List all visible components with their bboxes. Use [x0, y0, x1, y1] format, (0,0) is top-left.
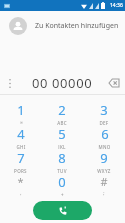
- staticText: 0: [58, 173, 66, 191]
- button[interactable]: 7: [0, 149, 41, 173]
- staticText: MNO: [98, 144, 111, 149]
- staticText: *: [17, 174, 24, 189]
- staticText: 5: [58, 125, 66, 143]
- button[interactable]: Zu Kontakten hinzufügen: [0, 11, 125, 40]
- button[interactable]: 6: [83, 125, 125, 149]
- staticText: 7: [17, 149, 25, 167]
- button[interactable]: Backspace: [103, 72, 125, 94]
- staticText: 4: [17, 125, 25, 143]
- staticText: WXYZ: [97, 168, 111, 173]
- staticText: +: [61, 192, 64, 197]
- staticText: 1: [17, 101, 25, 119]
- button[interactable]: 0: [41, 173, 83, 197]
- staticText: GHI: [16, 144, 26, 149]
- button[interactable]: 1: [0, 101, 41, 125]
- button[interactable]: 8: [41, 149, 83, 173]
- staticText: ∞: [19, 120, 24, 125]
- staticText: 3: [100, 101, 108, 119]
- staticText: 14:36: [110, 2, 123, 9]
- staticText: TUV: [57, 168, 67, 173]
- button[interactable]: More options: [0, 72, 20, 94]
- staticText: 8: [58, 149, 66, 167]
- staticText: 9: [100, 149, 108, 167]
- staticText: Zu Kontakten hinzufügen: [35, 21, 119, 31]
- button[interactable]: 5: [41, 125, 83, 149]
- staticText: 6: [101, 125, 109, 143]
- staticText: #: [100, 174, 108, 189]
- staticText: DEF: [99, 120, 109, 125]
- button[interactable]: 2: [41, 101, 83, 125]
- staticText: ,: [20, 190, 22, 196]
- staticText: JKL: [58, 144, 66, 149]
- staticText: 2: [58, 101, 66, 119]
- button[interactable]: Call: [33, 201, 92, 220]
- button[interactable]: #: [83, 173, 125, 197]
- button[interactable]: 9: [83, 149, 125, 173]
- staticText: ABC: [57, 120, 67, 125]
- button[interactable]: 4: [0, 125, 41, 149]
- staticText: PQRS: [14, 168, 27, 173]
- staticText: ;: [103, 190, 105, 196]
- button[interactable]: 3: [83, 101, 125, 125]
- staticText: 00 00000: [32, 74, 93, 92]
- button[interactable]: *: [0, 173, 41, 197]
